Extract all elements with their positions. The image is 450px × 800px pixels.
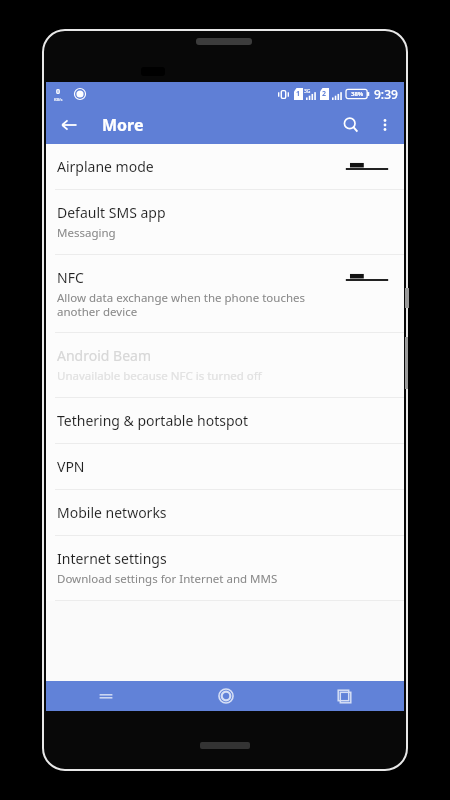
- button[interactable]: Toggle NFC: [344, 270, 390, 288]
- button[interactable]: NFC: [46, 255, 404, 332]
- staticText: 3G: [304, 88, 311, 95]
- button[interactable]: Home: [166, 681, 285, 711]
- staticText: Default SMS app: [57, 203, 166, 222]
- button[interactable]: Tethering & portable hotspot: [46, 398, 404, 443]
- button[interactable]: Airplane mode: [46, 144, 404, 189]
- staticText: 38%: [351, 90, 364, 98]
- staticText: Internet settings: [57, 549, 167, 568]
- staticText: KB/s: [54, 97, 63, 102]
- staticText: 9:39: [374, 86, 398, 102]
- button[interactable]: Back: [52, 108, 86, 142]
- button[interactable]: Android Beam: [46, 333, 404, 397]
- staticText: Airplane mode: [57, 157, 154, 176]
- staticText: 0: [56, 87, 61, 97]
- staticText: 1: [296, 89, 301, 99]
- staticText: More: [102, 114, 144, 136]
- button[interactable]: Toggle Airplane mode: [344, 159, 390, 177]
- staticText: Unavailable because NFC is turned off: [57, 368, 262, 384]
- staticText: Download settings for Internet and MMS: [57, 571, 278, 587]
- staticText: VPN: [57, 457, 85, 476]
- button[interactable]: More options: [368, 108, 402, 142]
- staticText: Android Beam: [57, 346, 151, 365]
- button[interactable]: Recent apps: [285, 681, 404, 711]
- button[interactable]: Mobile networks: [46, 490, 404, 535]
- button[interactable]: VPN: [46, 444, 404, 489]
- button[interactable]: Default SMS app: [46, 190, 404, 254]
- button[interactable]: Back: [46, 681, 166, 711]
- staticText: Messaging: [57, 225, 116, 241]
- button[interactable]: Search: [334, 108, 368, 142]
- staticText: NFC: [57, 268, 84, 287]
- button[interactable]: Internet settings: [46, 536, 404, 600]
- staticText: Allow data exchange when the phone touch…: [57, 290, 306, 319]
- staticText: 2: [322, 89, 327, 99]
- staticText: Mobile networks: [57, 503, 167, 522]
- staticText: Tethering & portable hotspot: [57, 411, 249, 430]
